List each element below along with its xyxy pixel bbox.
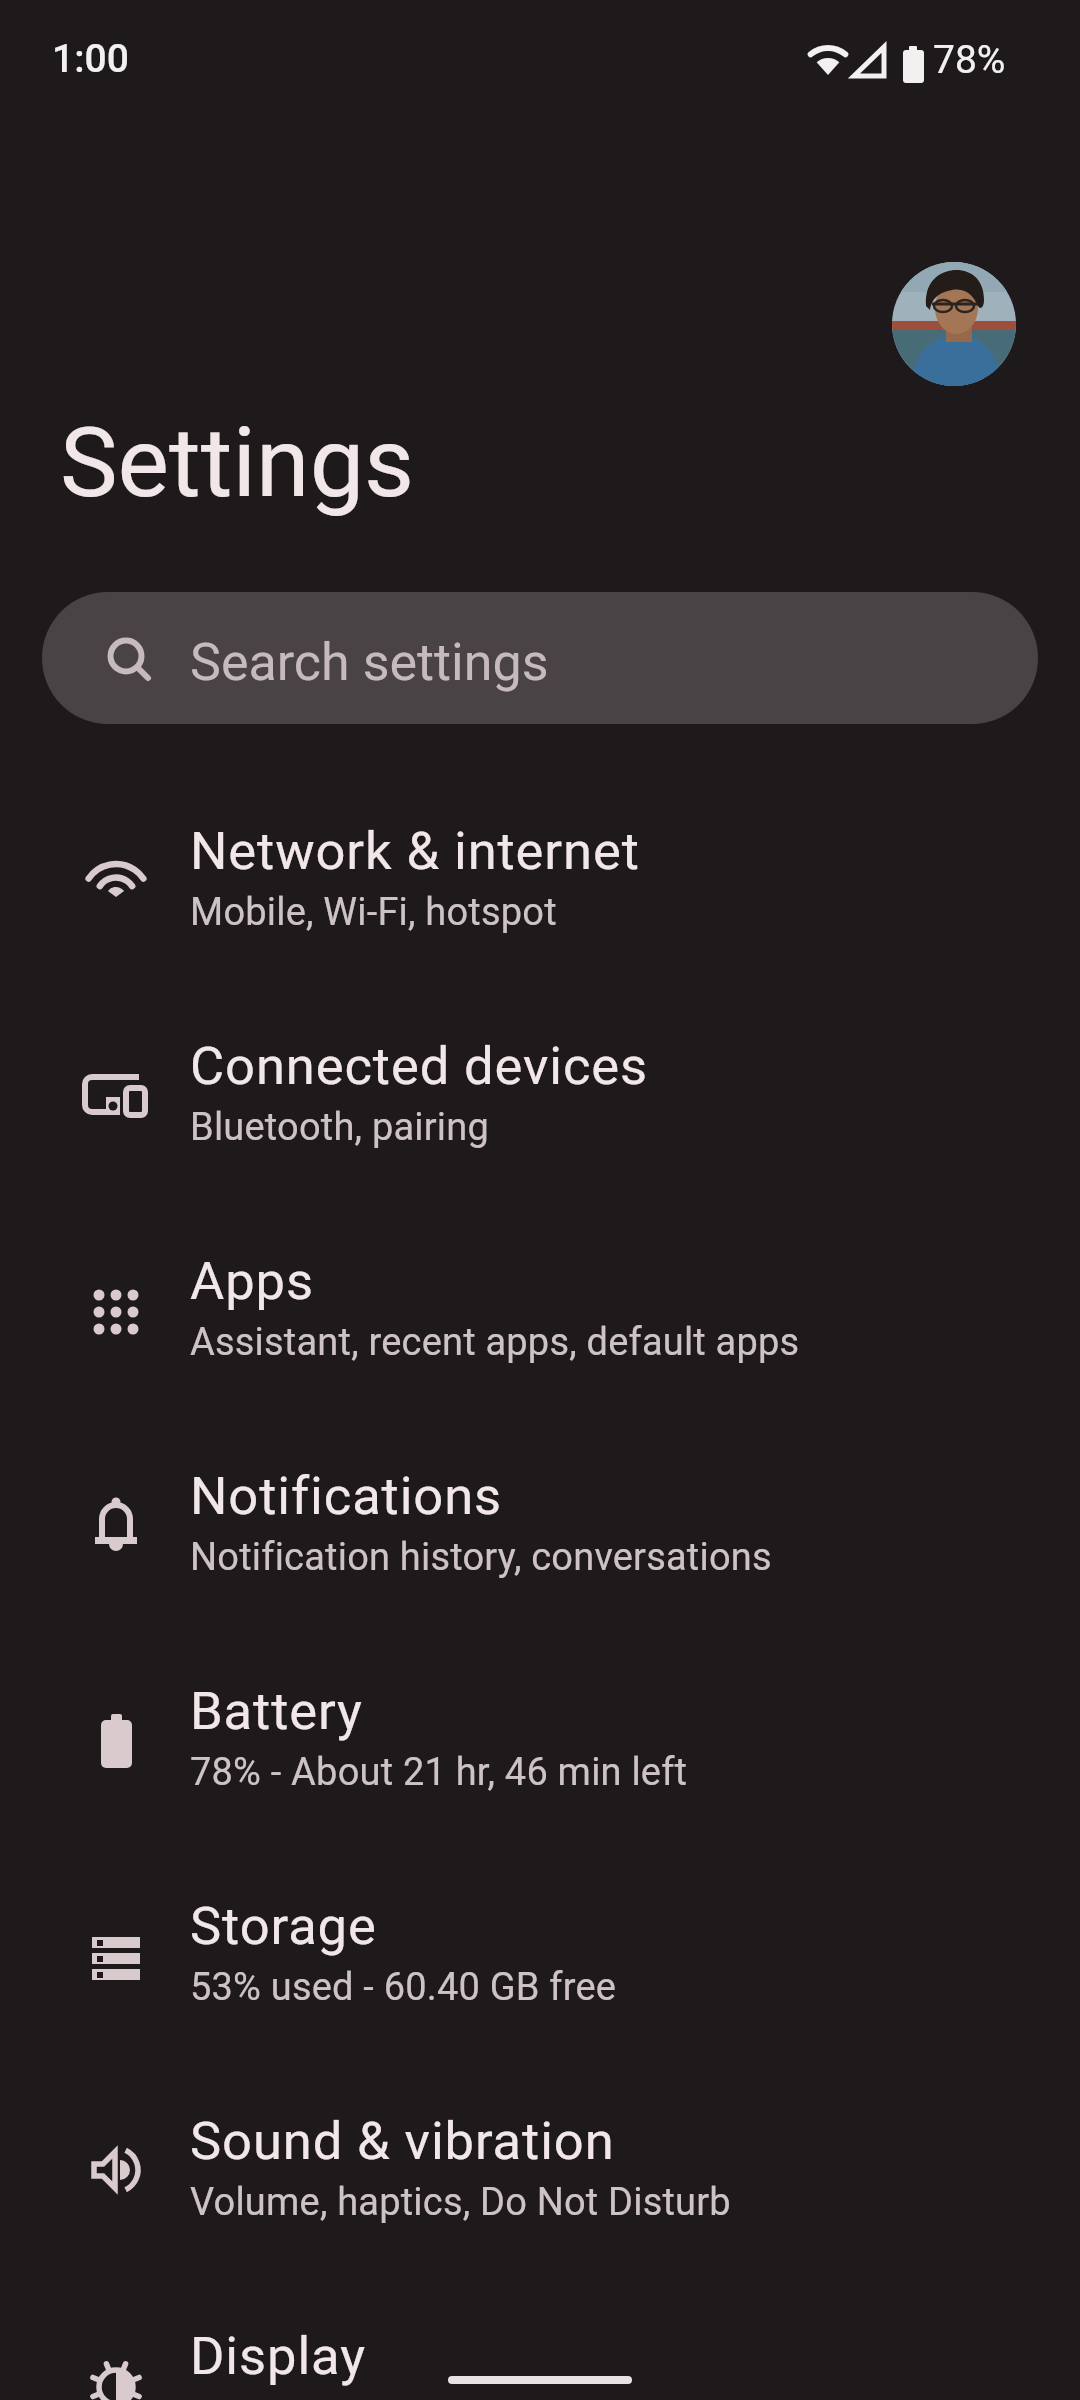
button[interactable]: Storage [0, 1845, 1080, 2060]
staticText: Connected devices [190, 1035, 649, 1097]
staticText: 1:00 [52, 36, 129, 82]
staticText: Apps [190, 1250, 314, 1312]
button[interactable]: Search settings [42, 592, 1038, 724]
staticText: Mobile, Wi-Fi, hotspot [190, 890, 557, 935]
staticText: Notifications [190, 1465, 503, 1527]
button[interactable]: Notifications [0, 1415, 1080, 1630]
button[interactable]: Display [0, 2275, 1080, 2400]
button[interactable]: Network & internet [0, 770, 1080, 985]
staticText: 53% used - 60.40 GB free [190, 1965, 617, 2010]
button[interactable]: Connected devices [0, 985, 1080, 1200]
staticText: Notification history, conversations [190, 1535, 772, 1580]
staticText: Bluetooth, pairing [190, 1105, 489, 1150]
staticText: Sound & vibration [190, 2110, 615, 2172]
staticText: Assistant, recent apps, default apps [190, 1320, 800, 1365]
staticText: 78% - About 21 hr, 46 min left [190, 1750, 688, 1795]
staticText: Storage [190, 1895, 377, 1957]
staticText: Settings [60, 406, 415, 520]
staticText: Network & internet [190, 820, 640, 882]
staticText: Battery [190, 1680, 363, 1742]
staticText: Volume, haptics, Do Not Disturb [190, 2180, 731, 2225]
button[interactable]: Apps [0, 1200, 1080, 1415]
staticText: 78% [933, 37, 1006, 83]
button[interactable]: Battery [0, 1630, 1080, 1845]
staticText: Display [190, 2325, 366, 2387]
button[interactable] [892, 262, 1016, 386]
button[interactable]: Sound & vibration [0, 2060, 1080, 2275]
staticText: Search settings [190, 632, 549, 693]
